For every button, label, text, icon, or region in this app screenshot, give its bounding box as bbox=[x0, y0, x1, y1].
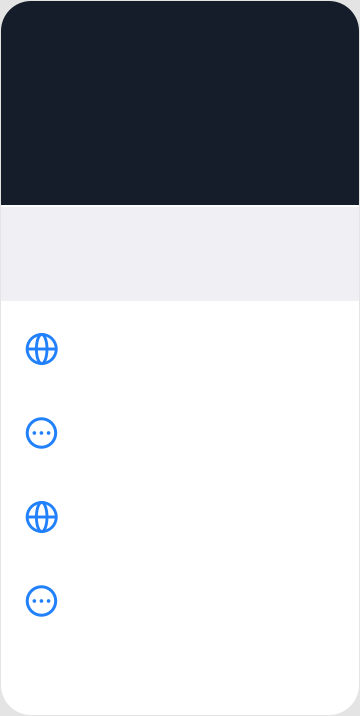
button[interactable]: Open website bbox=[1, 307, 359, 391]
button[interactable]: More options bbox=[1, 391, 359, 475]
button[interactable]: More options bbox=[1, 559, 359, 643]
button[interactable]: Open website bbox=[1, 475, 359, 559]
